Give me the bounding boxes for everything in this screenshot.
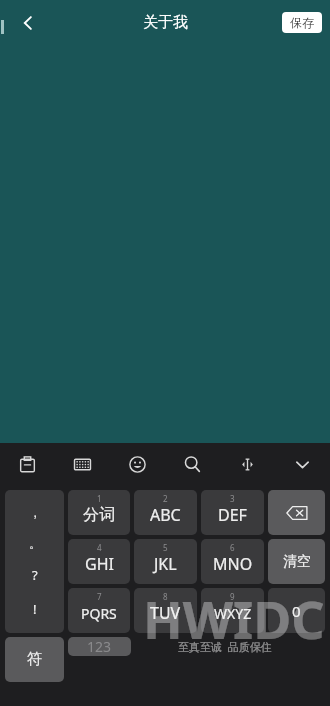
button[interactable]: 1 bbox=[68, 490, 130, 535]
staticText: 至真至诚 品质保住 bbox=[178, 639, 272, 654]
staticText: 0 bbox=[292, 601, 301, 621]
staticText: 2 bbox=[163, 493, 168, 504]
staticText: 123 bbox=[87, 637, 112, 656]
staticText: GHI bbox=[85, 553, 114, 575]
button[interactable]: Search bbox=[165, 443, 220, 485]
button[interactable]: 9 bbox=[201, 588, 264, 633]
button[interactable]: ， bbox=[5, 490, 64, 633]
button[interactable]: 符 bbox=[5, 637, 64, 682]
staticText: 分词 bbox=[83, 505, 115, 525]
staticText: ! bbox=[33, 600, 37, 618]
staticText: 1 bbox=[97, 493, 102, 504]
staticText: 9 bbox=[230, 591, 235, 602]
staticText: DEF bbox=[218, 504, 247, 526]
button[interactable]: 6 bbox=[201, 539, 264, 584]
button[interactable]: Emoji bbox=[110, 443, 165, 485]
button[interactable]: 清空 bbox=[268, 539, 325, 584]
staticText: 关于我 bbox=[143, 13, 188, 32]
staticText: PQRS bbox=[81, 604, 117, 623]
button[interactable]: Clipboard bbox=[0, 443, 55, 485]
staticText: ABC bbox=[150, 504, 181, 526]
staticText: MNO bbox=[213, 553, 253, 575]
staticText: JKL bbox=[154, 553, 177, 575]
staticText: 保存 bbox=[290, 15, 314, 30]
button[interactable]: 保存 bbox=[282, 12, 322, 33]
staticText: 符 bbox=[27, 650, 42, 669]
staticText: WXYZ bbox=[214, 604, 252, 623]
button[interactable]: 3 bbox=[201, 490, 264, 535]
staticText: 8 bbox=[163, 591, 168, 602]
button[interactable]: 5 bbox=[134, 539, 197, 584]
button[interactable]: Back bbox=[8, 3, 48, 43]
button[interactable]: 7 bbox=[68, 588, 130, 633]
staticText: 。 bbox=[29, 536, 41, 551]
button[interactable]: Backspace bbox=[268, 490, 325, 535]
staticText: TUV bbox=[150, 602, 181, 624]
button[interactable]: 2 bbox=[134, 490, 197, 535]
button[interactable]: 0 bbox=[268, 588, 325, 633]
button[interactable]: Hide keyboard bbox=[275, 443, 330, 485]
button[interactable]: Move cursor bbox=[220, 443, 275, 485]
staticText: 3 bbox=[230, 493, 235, 504]
staticText: 4 bbox=[97, 542, 102, 553]
staticText: 5 bbox=[163, 542, 168, 553]
staticText: ? bbox=[32, 566, 38, 584]
button[interactable]: Keyboard layout bbox=[55, 443, 110, 485]
staticText: HWIDC bbox=[143, 583, 325, 654]
staticText: 清空 bbox=[283, 553, 311, 571]
button[interactable]: 4 bbox=[68, 539, 130, 584]
staticText: 7 bbox=[97, 591, 102, 602]
button[interactable]: 123 bbox=[68, 637, 131, 656]
staticText: 6 bbox=[230, 542, 235, 553]
staticText: ， bbox=[29, 505, 41, 520]
button[interactable]: 8 bbox=[134, 588, 197, 633]
